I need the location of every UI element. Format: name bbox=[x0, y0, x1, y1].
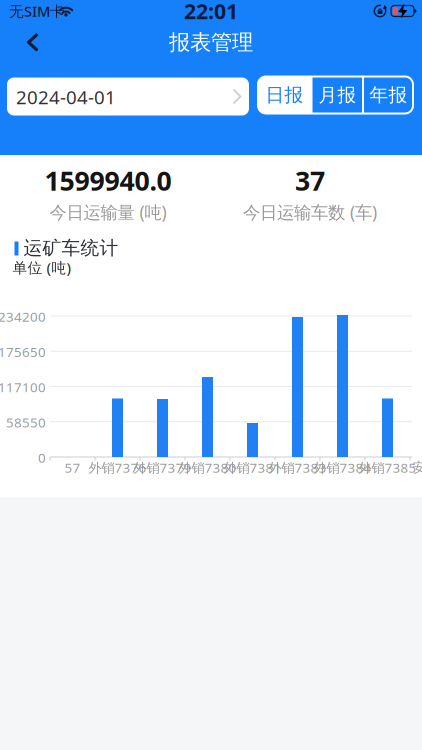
button[interactable] bbox=[11, 27, 55, 57]
button[interactable]: 月报 bbox=[311, 76, 363, 113]
staticText: 57 bbox=[64, 459, 80, 476]
button[interactable]: 年报 bbox=[363, 76, 414, 113]
staticText: 外销7385 bbox=[358, 459, 416, 476]
staticText: 22:01 bbox=[184, 0, 238, 25]
staticText: 175650 bbox=[0, 343, 46, 361]
button[interactable]: 日报 bbox=[258, 76, 311, 113]
staticText: 外销7381 bbox=[223, 459, 281, 476]
staticText: 日报 bbox=[265, 83, 303, 106]
staticText: 今日运输量 (吨) bbox=[49, 200, 166, 223]
staticText: 37 bbox=[295, 163, 325, 198]
staticText: 外销7376 bbox=[88, 459, 146, 476]
staticText: 安 bbox=[412, 459, 422, 476]
staticText: 外销7384 bbox=[313, 459, 371, 476]
staticText: 58550 bbox=[6, 413, 46, 431]
staticText: 月报 bbox=[318, 83, 356, 106]
button[interactable]: 2024-04-01 bbox=[7, 77, 249, 115]
staticText: 2024-04-01 bbox=[16, 85, 116, 109]
staticText: 无SIM卡 bbox=[9, 1, 65, 21]
staticText: 今日运输车数 (车) bbox=[243, 200, 377, 223]
staticText: 报表管理 bbox=[169, 29, 253, 56]
staticText: 234200 bbox=[0, 308, 46, 325]
staticText: 年报 bbox=[369, 83, 407, 106]
staticText: 外销7383 bbox=[268, 459, 326, 476]
staticText: 外销7380 bbox=[178, 459, 236, 476]
staticText: 外销7379 bbox=[133, 459, 191, 476]
staticText: 运矿车统计 bbox=[23, 236, 118, 259]
staticText: 0 bbox=[38, 449, 46, 466]
staticText: 单位 (吨) bbox=[12, 258, 71, 277]
staticText: 1599940.0 bbox=[44, 163, 171, 198]
staticText: 117100 bbox=[0, 378, 46, 396]
